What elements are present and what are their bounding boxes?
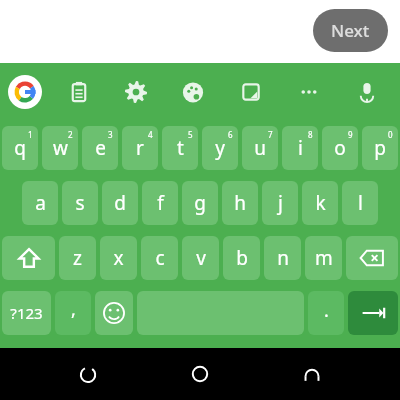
button[interactable]: u [242,126,278,170]
button[interactable]: ?123 [2,291,51,335]
button[interactable]: e [82,126,118,170]
staticText: x [113,245,124,271]
staticText: d [114,190,126,216]
button[interactable]: t [162,126,198,170]
staticText: b [236,245,248,271]
button[interactable]: Enter [348,291,398,335]
staticText: t [177,135,184,161]
button[interactable]: Clipboard [50,63,107,120]
button[interactable]: Settings [107,63,164,120]
staticText: o [334,135,346,161]
staticText: i [298,135,303,161]
staticText: 4 [148,129,153,140]
staticText: r [136,135,144,161]
button[interactable]: r [122,126,158,170]
staticText: q [14,135,26,161]
staticText: , [71,297,76,322]
staticText: 5 [188,129,193,140]
button[interactable]: z [59,236,96,280]
staticText: 8 [308,129,313,140]
staticText: 0 [388,129,393,140]
button[interactable]: w [42,126,78,170]
staticText: n [277,245,289,271]
button[interactable]: q [2,126,38,170]
button[interactable]: , [55,291,91,335]
button[interactable]: g [182,181,218,225]
button[interactable]: Google Search [8,75,42,109]
button[interactable]: v [182,236,219,280]
staticText: l [358,190,363,216]
button[interactable]: b [223,236,260,280]
button[interactable]: Stickers [222,63,280,120]
staticText: k [315,190,326,216]
button[interactable]: o [322,126,358,170]
button[interactable]: Backspace [346,236,398,280]
button[interactable]: a [22,181,58,225]
staticText: Next [331,19,370,42]
staticText: 7 [268,129,273,140]
staticText: 9 [348,129,353,140]
staticText: 6 [228,129,233,140]
button[interactable]: Shift [2,236,55,280]
button[interactable]: c [141,236,178,280]
button[interactable]: d [102,181,138,225]
staticText: ?123 [10,303,43,323]
staticText: 3 [108,129,113,140]
staticText: a [35,190,46,216]
staticText: . [324,298,329,323]
button[interactable]: Themes [164,63,222,120]
staticText: j [278,190,283,216]
staticText: c [155,245,165,271]
button[interactable]: More options [280,63,338,120]
button[interactable]: l [342,181,378,225]
button[interactable]: j [262,181,298,225]
button[interactable]: Emoji [95,291,133,335]
button[interactable]: Recents [64,350,112,398]
staticText: v [196,245,206,271]
button[interactable]: y [202,126,238,170]
staticText: z [73,245,82,271]
staticText: u [254,135,266,161]
staticText: s [75,190,85,216]
button[interactable]: Back [288,350,336,398]
staticText: f [157,190,164,216]
staticText: m [315,245,333,271]
button[interactable]: . [308,291,344,335]
button[interactable]: m [305,236,342,280]
button[interactable]: k [302,181,338,225]
button[interactable]: p [362,126,398,170]
staticText: y [215,135,225,161]
button[interactable]: i [282,126,318,170]
staticText: w [53,135,68,161]
button[interactable]: f [142,181,178,225]
button[interactable]: h [222,181,258,225]
staticText: h [234,190,246,216]
staticText: 1 [28,129,33,140]
button[interactable]: n [264,236,301,280]
staticText: p [374,135,386,161]
staticText: e [95,135,106,161]
button[interactable]: Home [176,350,224,398]
staticText: 2 [68,129,73,140]
button[interactable]: s [62,181,98,225]
button[interactable]: Next [313,9,388,52]
button[interactable]: Voice input [338,63,396,120]
button[interactable]: x [100,236,137,280]
staticText: g [194,190,206,216]
